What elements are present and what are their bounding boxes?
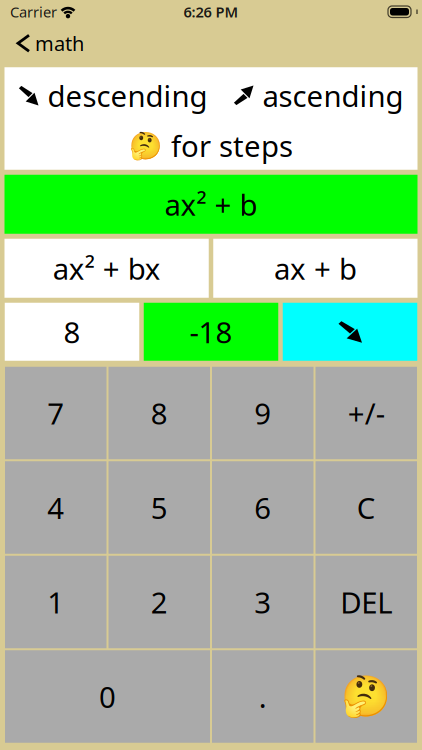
staticText: math [35,30,84,57]
button[interactable]: 6 [212,461,313,554]
staticText: ax² + bx [53,249,161,288]
button[interactable]: 2 [108,556,210,648]
button[interactable]: 7 [5,367,106,459]
staticText: 🤔 [129,130,162,161]
staticText: 7 [47,393,64,432]
staticText: 6 [254,488,271,527]
staticText: -18 [189,312,232,351]
button[interactable]: 🤔 [129,120,293,170]
staticText: +/- [348,393,385,432]
staticText: descending [47,76,207,115]
button[interactable]: ax² + b [4,175,417,234]
button[interactable]: math [18,30,84,57]
staticText: ascending [262,76,403,115]
button[interactable]: 3 [212,556,313,648]
button[interactable]: . [212,650,313,743]
staticText: 1 [47,582,64,621]
button[interactable]: 0 [5,650,210,743]
button[interactable]: 9 [212,367,313,459]
button[interactable] [283,303,417,361]
staticText: 3 [254,582,271,621]
staticText: 🤔 [341,674,391,719]
button[interactable]: +/- [315,367,417,459]
button[interactable]: descending [18,76,207,115]
staticText: for steps [171,126,293,165]
staticText: 4 [47,488,64,527]
staticText: 9 [254,393,271,432]
staticText: 5 [151,488,168,527]
staticText: 8 [151,393,168,432]
button[interactable]: ax + b [213,239,417,298]
button[interactable]: DEL [315,556,417,648]
staticText: 2 [151,582,168,621]
button[interactable]: 🤔 [315,650,417,743]
staticText: 0 [99,677,116,716]
staticText: . [259,677,267,716]
staticText: DEL [340,582,392,621]
staticText: 6:26 PM [183,2,238,21]
button[interactable]: ax² + bx [4,239,209,298]
staticText: ax² + b [164,185,257,224]
button[interactable]: 8 [108,367,210,459]
button[interactable]: 4 [5,461,106,554]
button[interactable]: C [315,461,417,554]
staticText: Carrier [10,2,57,21]
button[interactable]: 5 [108,461,210,554]
button[interactable]: ascending [233,76,403,115]
button[interactable]: 1 [5,556,106,648]
staticText: 8 [63,312,80,351]
staticText: ax + b [274,249,357,288]
staticText: C [357,488,376,527]
